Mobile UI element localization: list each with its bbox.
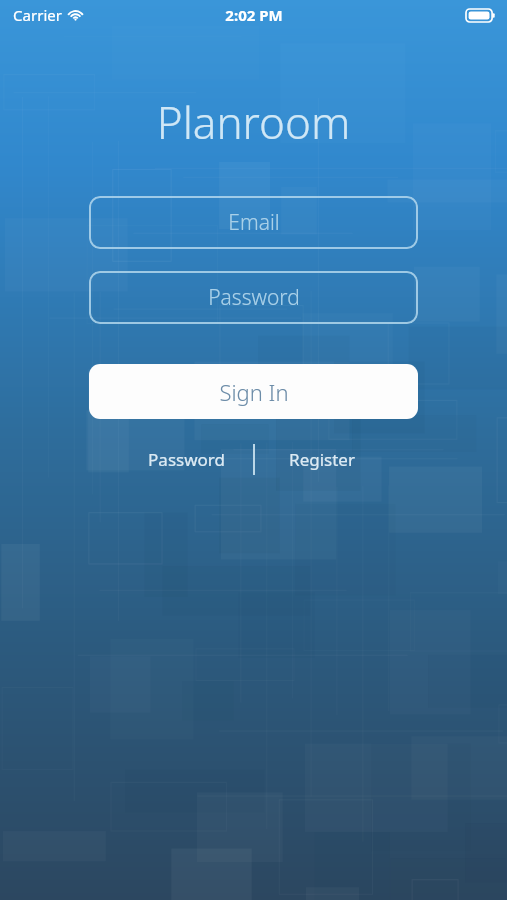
other: Battery full xyxy=(466,9,495,22)
staticText: Password xyxy=(208,283,300,312)
button[interactable]: Password xyxy=(120,442,253,476)
button[interactable]: Email xyxy=(89,196,418,249)
other: Wi-Fi signal xyxy=(68,9,83,21)
staticText: Password xyxy=(148,448,225,471)
staticText: Sign In xyxy=(219,377,289,407)
button[interactable]: Sign In xyxy=(89,364,418,419)
button[interactable]: Register xyxy=(255,442,388,476)
staticText: Register xyxy=(289,448,355,471)
staticText: Email xyxy=(228,208,280,237)
staticText: Carrier xyxy=(13,5,62,25)
staticText: Planroom xyxy=(0,92,507,152)
button[interactable]: Password xyxy=(89,271,418,324)
staticText: 2:02 PM xyxy=(225,5,283,25)
